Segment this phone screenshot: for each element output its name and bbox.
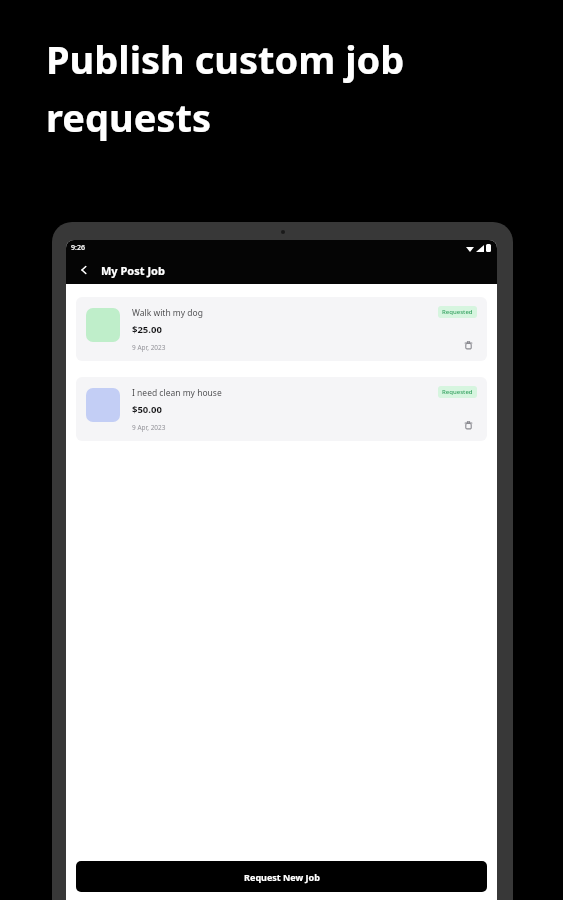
staticText: Requested [442,308,473,316]
button[interactable]: Requested [438,306,477,318]
button[interactable]: Walk with my dog [76,297,487,361]
button[interactable]: Delete job [461,418,475,432]
staticText: 9:26 [71,243,85,253]
button[interactable]: I need clean my house [76,377,487,441]
staticText: $25.00 [132,323,162,336]
button[interactable]: Back [72,258,96,282]
staticText: Publish custom job [46,33,405,85]
staticText: My Post Job [101,263,165,278]
staticText: Requested [442,388,473,396]
staticText: I need clean my house [132,387,222,399]
staticText: 9 Apr, 2023 [132,423,166,432]
staticText: $50.00 [132,403,162,416]
button[interactable]: Request New Job [76,861,487,892]
button[interactable]: Requested [438,386,477,398]
staticText: Request New Job [244,871,320,883]
button[interactable]: Delete job [461,338,475,352]
staticText: requests [46,91,211,143]
staticText: 9 Apr, 2023 [132,343,166,352]
staticText: Walk with my dog [132,307,203,319]
